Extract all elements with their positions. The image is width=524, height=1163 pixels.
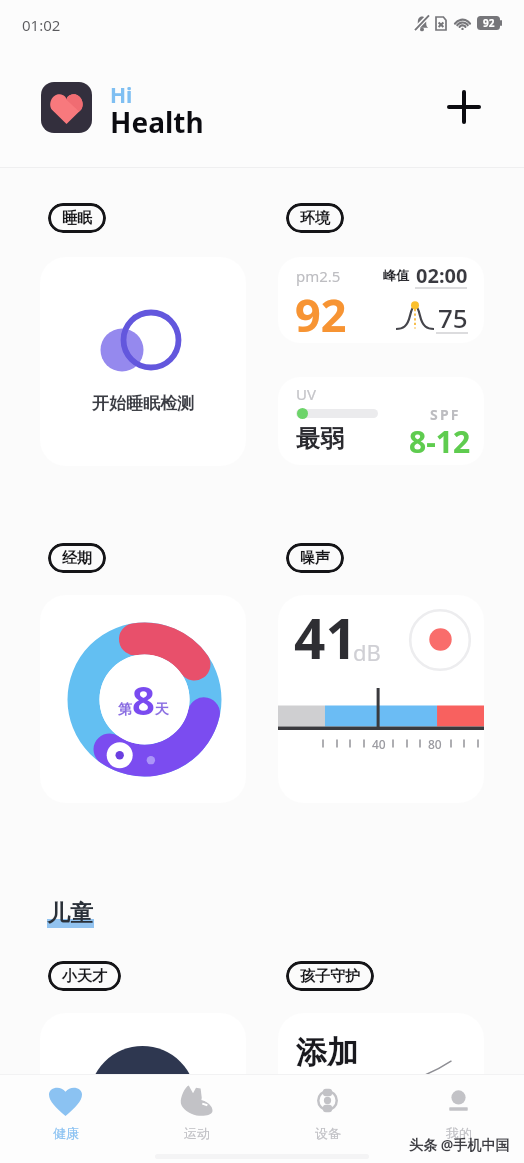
staticText: 开始睡眠检测 (92, 393, 194, 414)
button[interactable]: 孩子守护 (286, 961, 374, 991)
staticText: SPF (430, 405, 461, 424)
button[interactable] (40, 1013, 246, 1143)
button[interactable]: 经期 (48, 543, 106, 573)
staticText: Hi (110, 81, 133, 110)
staticText: 75 (438, 300, 468, 335)
staticText: 41 (294, 600, 357, 675)
staticText: 40 (372, 736, 386, 752)
button[interactable]: Hi Health logo (41, 82, 92, 133)
staticText: 我的 (446, 1125, 472, 1141)
staticText: 头条 @手机中国 (409, 1135, 510, 1154)
button[interactable]: 睡眠 (48, 203, 106, 233)
staticText: 小天才 (62, 967, 107, 986)
staticText: 8 (132, 672, 155, 726)
staticText: Health (110, 103, 204, 141)
button[interactable]: pm2.5 (278, 257, 484, 343)
button[interactable]: 环境 (286, 203, 344, 233)
staticText: 环境 (300, 209, 330, 228)
staticText: 第 (118, 701, 132, 719)
staticText: 经期 (62, 549, 92, 568)
button[interactable]: 开始睡眠检测 (40, 257, 246, 466)
button[interactable]: 小天才 (48, 961, 121, 991)
button[interactable]: 噪声 (286, 543, 344, 573)
staticText: 添加 (296, 1033, 358, 1072)
staticText: 噪声 (300, 549, 330, 568)
button[interactable]: 41 (278, 595, 484, 803)
button[interactable]: 添加 (278, 1013, 484, 1143)
staticText: 92 (295, 284, 347, 343)
staticText: 运动 (184, 1125, 210, 1141)
staticText: pm2.5 (296, 266, 341, 286)
staticText: 最弱 (296, 424, 344, 454)
staticText: 设备 (315, 1125, 341, 1141)
button[interactable]: 第 (40, 595, 246, 803)
button[interactable]: 运动 (131, 1085, 262, 1141)
staticText: 80 (428, 736, 442, 752)
button[interactable]: 设备 (262, 1085, 393, 1141)
staticText: 01:02 (22, 15, 61, 35)
staticText: 儿童 (47, 899, 93, 928)
staticText: 峰值 (383, 267, 409, 283)
staticText: UV (296, 384, 316, 404)
button[interactable]: 健康 (0, 1085, 131, 1141)
button[interactable]: Add (443, 86, 485, 128)
staticText: 睡眠 (62, 209, 92, 228)
staticText: dB (353, 637, 381, 667)
button[interactable]: 我的 (393, 1085, 524, 1141)
staticText: 02:00 (416, 262, 468, 289)
staticText: 92 (483, 16, 495, 30)
button[interactable]: UV (278, 377, 484, 465)
staticText: 孩子守护 (300, 967, 360, 986)
staticText: 天 (155, 701, 169, 719)
staticText: 8-12 (409, 421, 471, 462)
staticText: 健康 (53, 1125, 79, 1141)
